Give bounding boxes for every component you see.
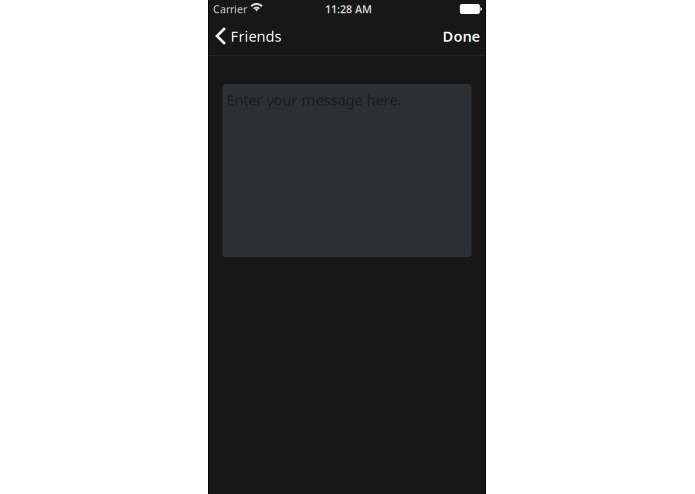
staticText: Enter your message here. (226, 90, 401, 109)
staticText: 11:28 AM (325, 2, 372, 16)
button[interactable]: Friends (209, 21, 281, 53)
staticText: Carrier (213, 2, 247, 16)
staticText: Friends (230, 26, 281, 46)
button[interactable]: Done (442, 21, 485, 53)
staticText: Done (442, 26, 480, 46)
